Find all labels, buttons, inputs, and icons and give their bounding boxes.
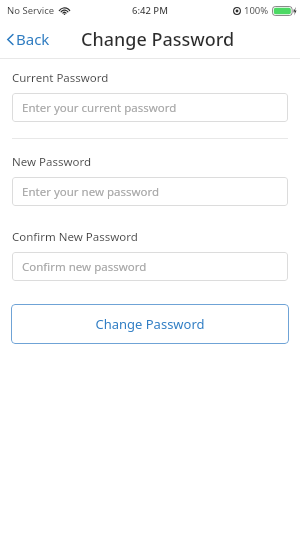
button[interactable]: Enter your current password	[12, 93, 288, 122]
button[interactable]: Confirm new password	[12, 252, 288, 281]
button[interactable]: Change Password	[11, 304, 289, 344]
staticText: Confirm New Password	[12, 229, 138, 245]
staticText: Current Password	[12, 70, 109, 86]
staticText: Change Password	[81, 27, 235, 52]
staticText: New Password	[12, 154, 92, 170]
button[interactable]: Enter your new password	[12, 177, 288, 206]
staticText: Confirm new password	[22, 259, 147, 275]
staticText: No Service	[7, 4, 55, 17]
button[interactable]: Back	[0, 25, 56, 53]
staticText: Enter your new password	[22, 184, 160, 200]
staticText: 100%	[244, 4, 269, 17]
staticText: 6:42 PM	[132, 4, 168, 17]
staticText: Back	[16, 29, 50, 49]
staticText: Enter your current password	[22, 100, 177, 116]
staticText: Change Password	[95, 315, 205, 333]
